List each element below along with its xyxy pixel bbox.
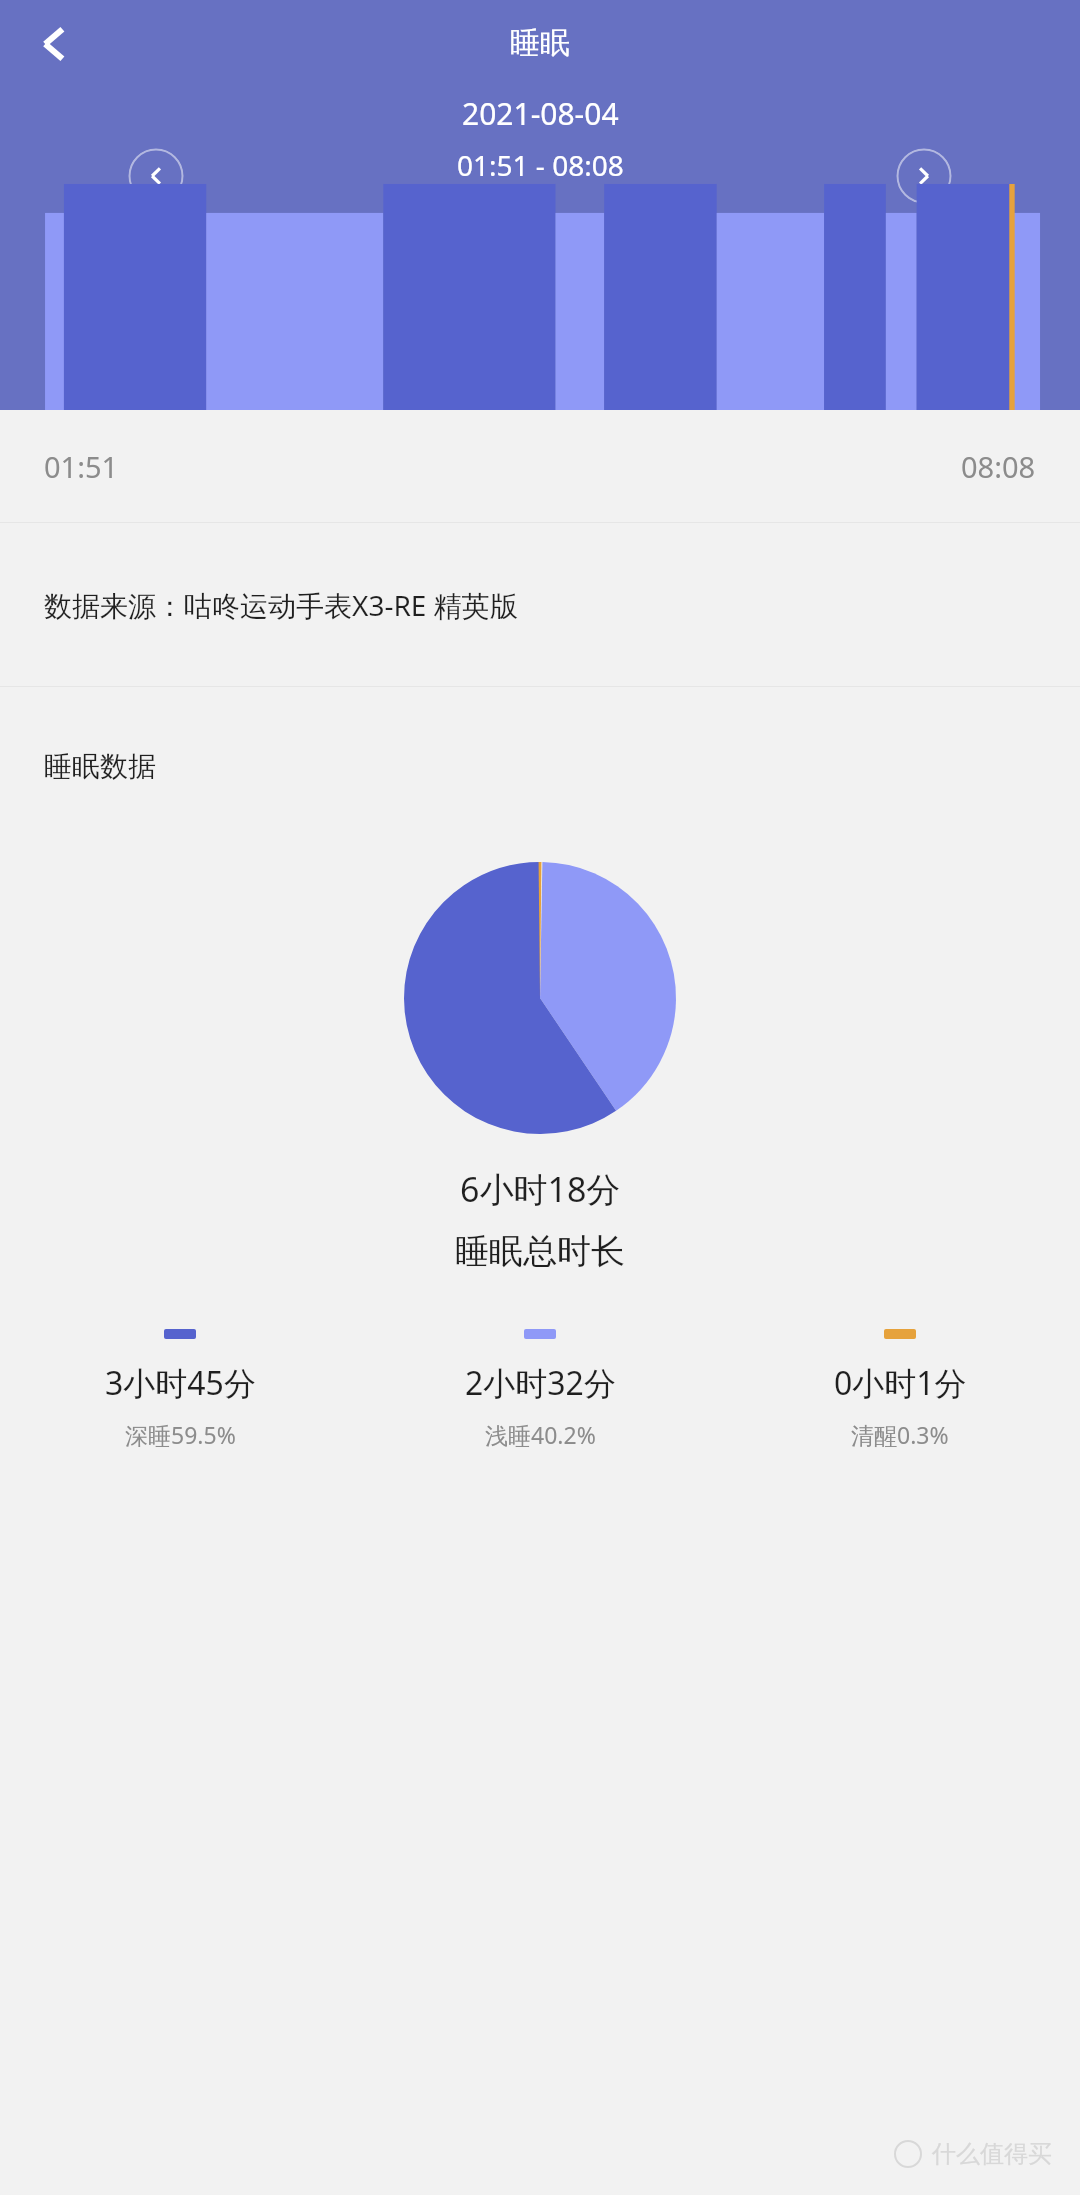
staticText: 01:51 [44,447,119,486]
staticText: 数据来源：咕咚运动手表X3-RE 精英版 [44,586,518,624]
staticText: 什么值得买 [932,2139,1052,2169]
button[interactable]: Next day [896,148,952,204]
staticText: 睡眠 [510,24,570,62]
staticText: 2021-08-04 [462,93,619,134]
staticText: 2小时32分 [465,1361,616,1405]
button[interactable]: 3小时45分 [0,1329,360,1450]
button[interactable]: 0小时1分 [720,1329,1080,1450]
staticText: 浅睡40.2% [485,1419,596,1450]
staticText: 0小时1分 [834,1361,967,1405]
staticText: 01:51 - 08:08 [457,146,624,184]
button[interactable]: Back [14,4,94,84]
staticText: 08:08 [961,447,1036,486]
staticText: 睡眠数据 [44,749,156,784]
button[interactable]: Previous day [128,148,184,204]
staticText: 清醒0.3% [851,1419,949,1450]
staticText: 深睡59.5% [125,1419,236,1450]
staticText: 6小时18分 [460,1166,621,1212]
button[interactable]: 2小时32分 [360,1329,720,1450]
staticText: 3小时45分 [105,1361,256,1405]
button[interactable]: 数据来源：咕咚运动手表X3-RE 精英版 [0,523,1080,686]
staticText: 睡眠总时长 [455,1230,625,1273]
